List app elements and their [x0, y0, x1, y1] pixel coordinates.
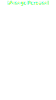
staticText: Manage Personal: [7, 0, 48, 6]
